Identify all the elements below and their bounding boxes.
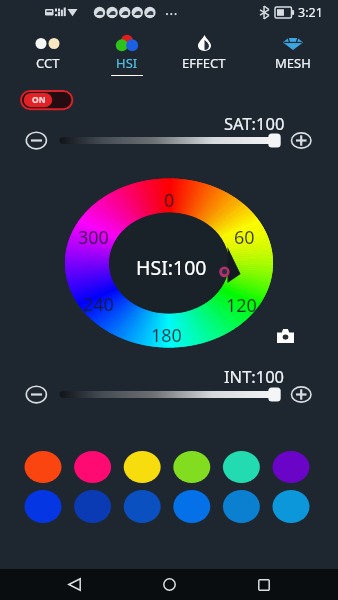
button[interactable]: Preset colour	[124, 451, 161, 483]
staticText: 60	[234, 225, 255, 250]
staticText: 0	[164, 188, 175, 213]
button[interactable]: Camera colour picker	[271, 322, 299, 350]
button[interactable]: Decrease SAT:100	[22, 129, 50, 157]
button[interactable]: Preset colour	[223, 490, 260, 523]
button[interactable]: HSI	[87, 28, 167, 76]
staticText: HSI	[116, 54, 138, 72]
button[interactable]: Preset colour	[74, 490, 111, 523]
button[interactable]: Preset colour	[273, 451, 310, 483]
staticText: MESH	[275, 54, 311, 72]
staticText: EFFECT	[182, 54, 226, 72]
button[interactable]: Preset colour	[74, 451, 111, 483]
button[interactable]: Increase INT:100	[287, 383, 315, 411]
button[interactable]: Preset colour	[124, 490, 161, 523]
staticText: CCT	[36, 54, 60, 72]
staticText: 120	[226, 293, 257, 318]
staticText: 180	[151, 323, 182, 348]
staticText: ON	[32, 94, 46, 106]
button[interactable]: Preset colour	[25, 451, 62, 483]
button[interactable]: Preset colour	[25, 490, 62, 523]
staticText: SAT:100	[224, 112, 285, 134]
button[interactable]: Preset colour	[273, 490, 310, 523]
staticText: 300	[78, 225, 109, 250]
button[interactable]: SAT:100 slider	[59, 131, 280, 151]
button[interactable]: CCT	[5, 28, 89, 76]
button[interactable]: Preset colour	[173, 451, 210, 483]
button[interactable]: INT:100 slider	[59, 385, 280, 405]
button[interactable]: Preset colour	[223, 451, 260, 483]
button[interactable]: Home	[148, 569, 190, 600]
button[interactable]: Power on/off	[20, 90, 73, 110]
button[interactable]: Back	[53, 569, 95, 600]
staticText: INT:100	[224, 365, 285, 387]
button[interactable]: Recent apps	[243, 569, 285, 600]
button[interactable]: MESH	[251, 28, 335, 76]
button[interactable]: Increase SAT:100	[287, 129, 315, 157]
button[interactable]: Preset colour	[173, 490, 210, 523]
button[interactable]: EFFECT	[164, 28, 244, 76]
staticText: 240	[83, 292, 114, 317]
staticText: 3:21	[298, 4, 323, 21]
button[interactable]: Decrease INT:100	[22, 383, 50, 411]
staticText: HSI:100	[136, 254, 207, 281]
